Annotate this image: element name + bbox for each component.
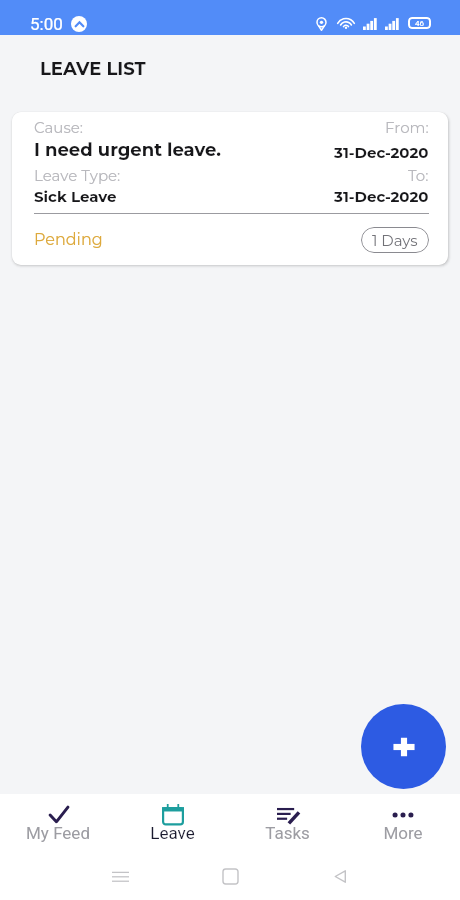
- button[interactable]: Recent apps: [106, 862, 134, 890]
- staticText: Tasks: [265, 823, 310, 843]
- staticText: More: [383, 823, 423, 843]
- staticText: 5:00: [30, 14, 63, 34]
- staticText: I need urgent leave.: [34, 139, 222, 161]
- staticText: Leave: [150, 823, 195, 843]
- staticText: 46: [415, 19, 424, 28]
- staticText: 31-Dec-2020: [334, 143, 429, 161]
- staticText: To:: [408, 166, 429, 184]
- staticText: 31-Dec-2020: [334, 187, 429, 205]
- button[interactable]: More: [345, 797, 460, 848]
- staticText: 1 Days: [372, 231, 418, 249]
- button[interactable]: Tasks: [230, 797, 345, 848]
- button[interactable]: My Feed: [0, 797, 115, 848]
- staticText: Sick Leave: [34, 187, 117, 205]
- button[interactable]: Add leave: [361, 704, 446, 789]
- button[interactable]: Home: [216, 862, 244, 890]
- button[interactable]: Back: [326, 862, 354, 890]
- button[interactable]: Leave: [115, 797, 230, 848]
- button[interactable]: Cause:: [12, 112, 448, 265]
- button[interactable]: 1 Days: [361, 227, 429, 253]
- staticText: From:: [385, 118, 429, 136]
- staticText: Cause:: [34, 118, 84, 136]
- staticText: My Feed: [26, 823, 90, 843]
- staticText: Leave Type:: [34, 166, 121, 184]
- staticText: Pending: [34, 230, 103, 250]
- staticText: LEAVE LIST: [40, 58, 146, 80]
